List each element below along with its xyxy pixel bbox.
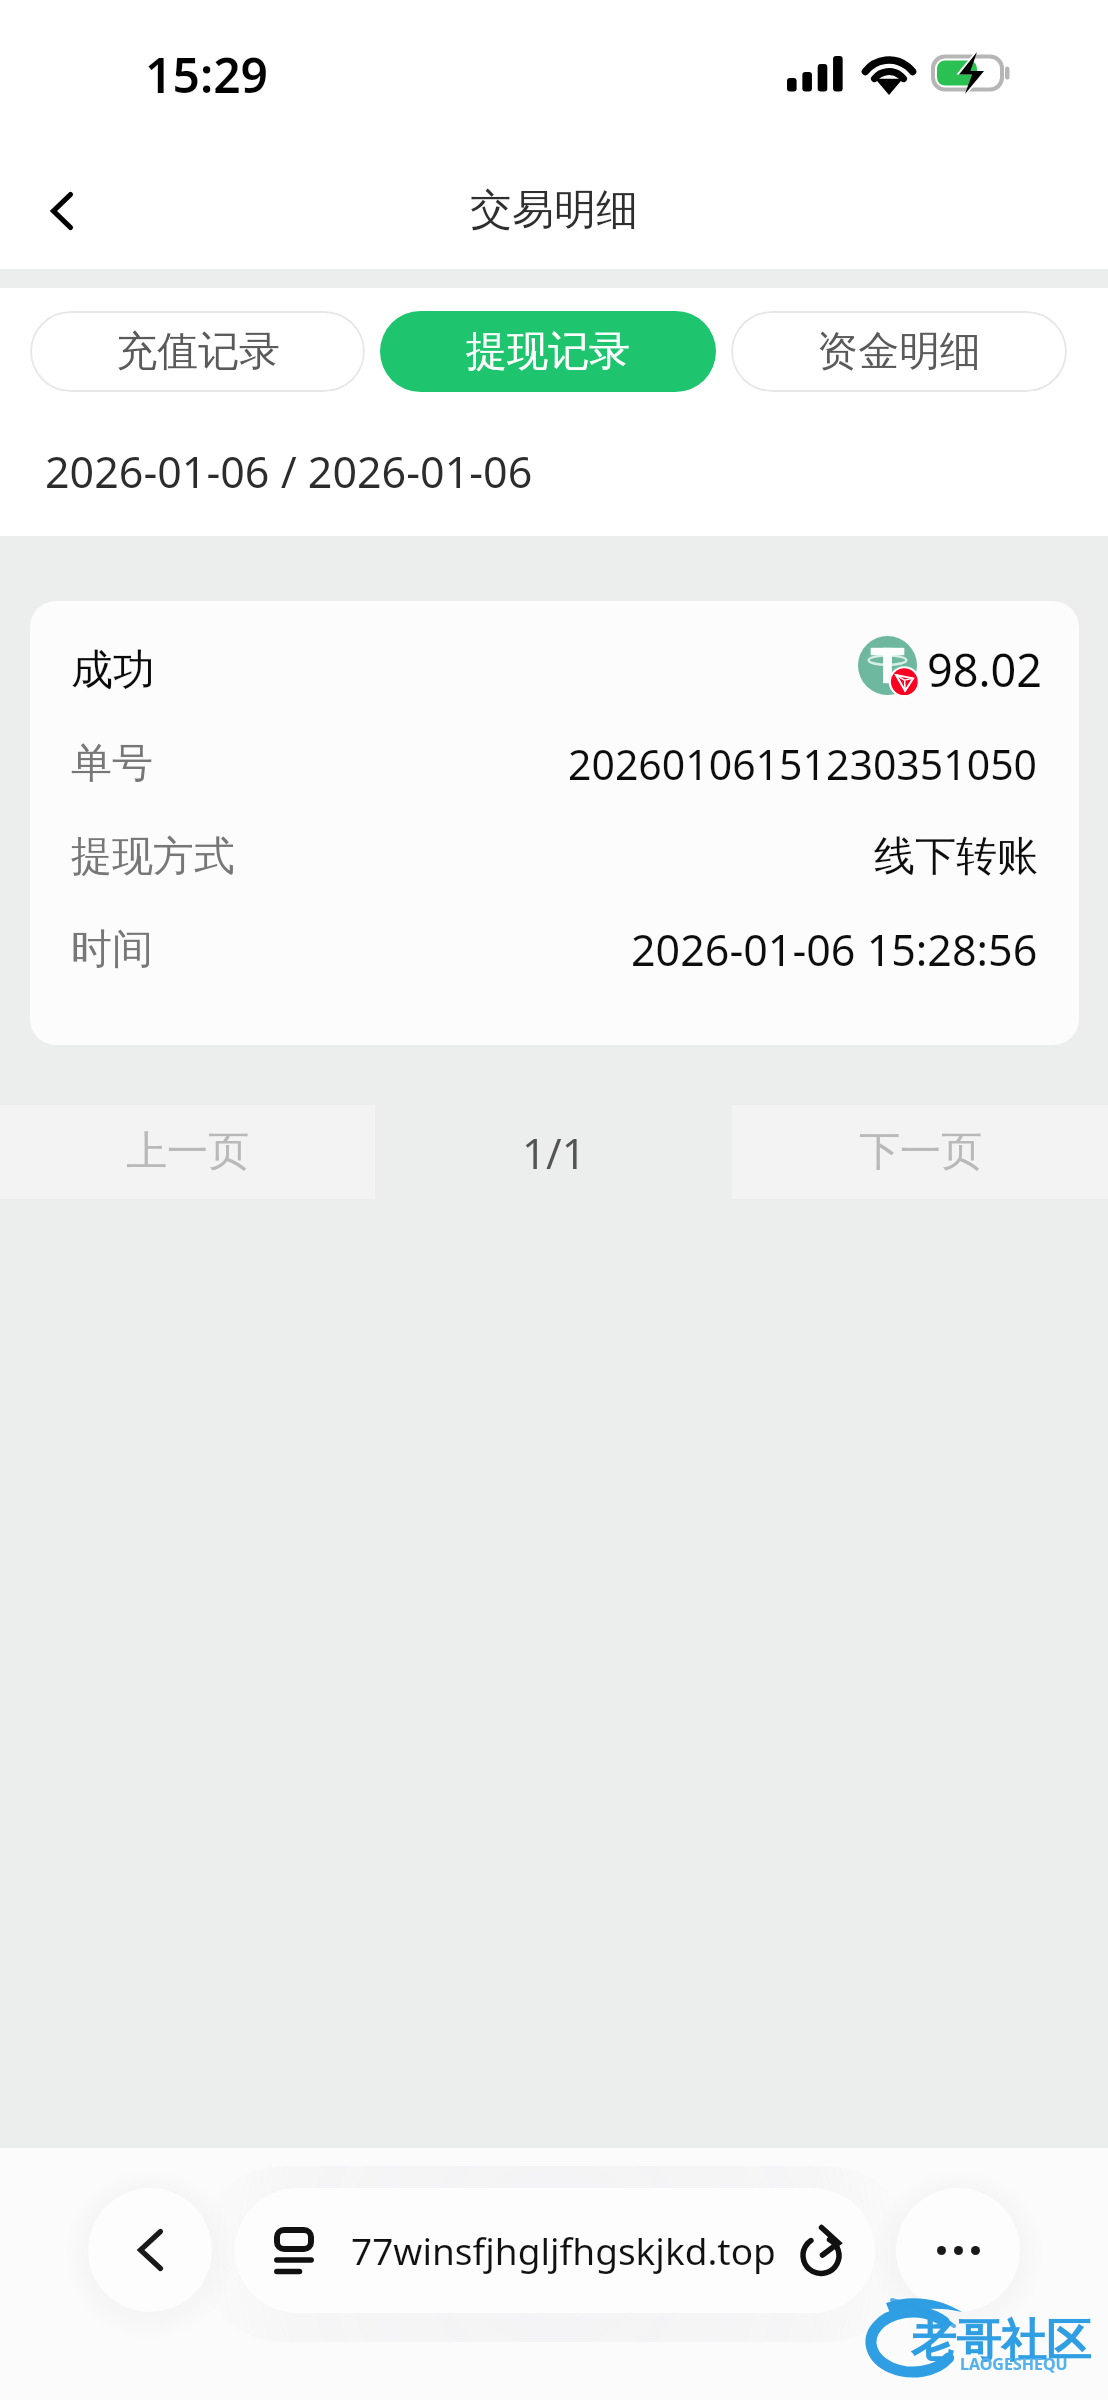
button[interactable]: 下一页 bbox=[732, 1105, 1108, 1199]
other: Reload bbox=[801, 2224, 843, 2276]
staticText: 15:29 bbox=[145, 42, 269, 107]
staticText: 单号 bbox=[71, 738, 153, 790]
staticText: 2026-01-06 15:28:56 bbox=[631, 920, 1038, 979]
staticText: 20260106151230351050 bbox=[568, 736, 1038, 792]
staticText: 98.02 bbox=[927, 639, 1043, 700]
staticText: 77winsfjhgljfhgskjkd.top bbox=[351, 2225, 776, 2275]
staticText: 提现方式 bbox=[71, 831, 235, 883]
staticText: 2026-01-06 / 2026-01-06 bbox=[45, 442, 533, 501]
button[interactable]: Back bbox=[0, 149, 124, 269]
staticText: 提现记录 bbox=[466, 326, 630, 378]
staticText: 交易明细 bbox=[470, 184, 638, 237]
staticText: 资金明细 bbox=[817, 326, 981, 378]
staticText: 老哥社区 bbox=[911, 2313, 1091, 2370]
button[interactable]: 77winsfjhgljfhgskjkd.top bbox=[235, 2188, 875, 2313]
staticText: 时间 bbox=[71, 924, 153, 976]
staticText: 充值记录 bbox=[116, 326, 280, 378]
staticText: 下一页 bbox=[859, 1126, 982, 1178]
staticText: 上一页 bbox=[126, 1126, 249, 1178]
button[interactable]: Back bbox=[88, 2188, 212, 2312]
button[interactable]: 充值记录 bbox=[30, 311, 365, 392]
button[interactable]: 提现记录 bbox=[380, 311, 716, 392]
staticText: 线下转账 bbox=[874, 831, 1038, 883]
button[interactable]: More options bbox=[896, 2188, 1020, 2312]
button[interactable]: 上一页 bbox=[0, 1105, 375, 1199]
staticText: LAOGESHEQU bbox=[960, 2353, 1068, 2375]
staticText: 1/1 bbox=[522, 1124, 586, 1181]
button[interactable]: 资金明细 bbox=[731, 311, 1067, 392]
staticText: 成功 bbox=[71, 644, 155, 697]
